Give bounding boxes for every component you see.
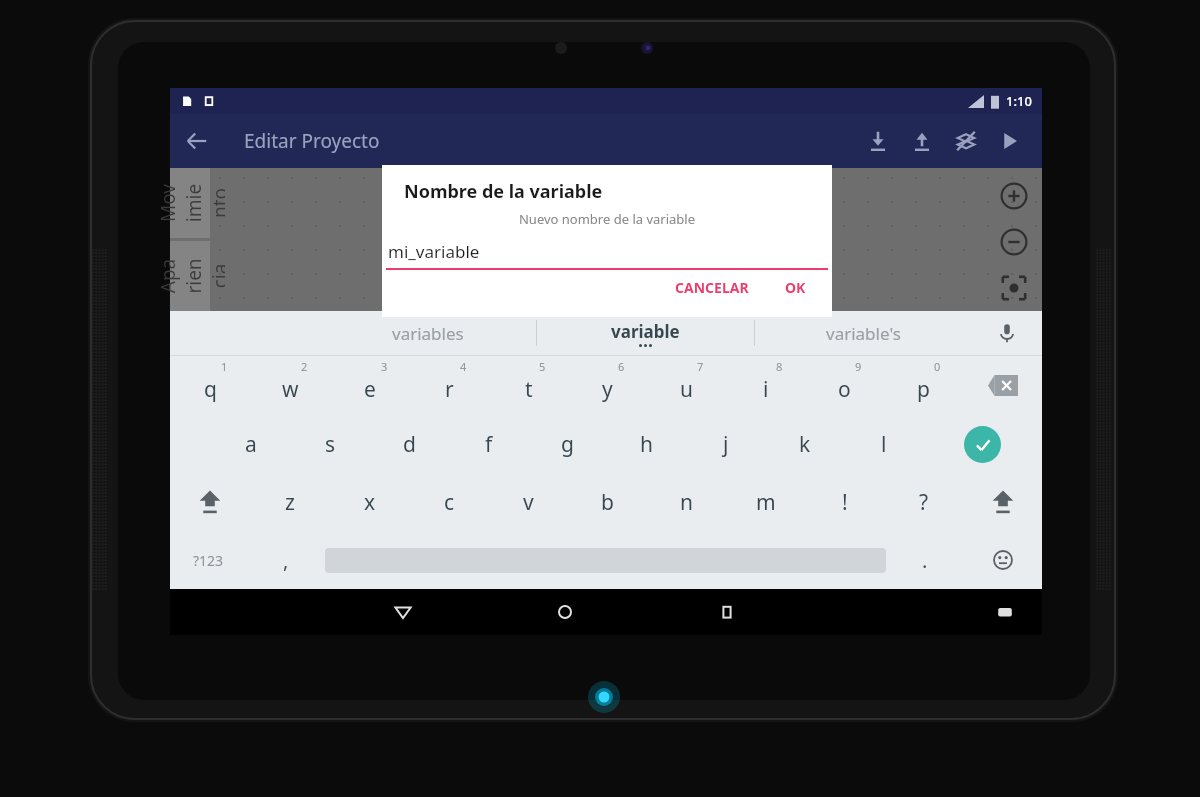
staticText: Apariencia — [155, 256, 225, 296]
button[interactable]: 3 — [330, 356, 410, 415]
button[interactable]: Layers off — [944, 119, 988, 163]
button[interactable]: 2 — [250, 356, 330, 415]
staticText: l — [881, 430, 887, 459]
button[interactable]: 7 — [647, 356, 726, 415]
staticText: b — [601, 488, 614, 517]
button[interactable]: OK — [777, 272, 814, 303]
staticText: h — [640, 430, 653, 459]
staticText: f — [485, 430, 493, 459]
button[interactable]: s — [291, 415, 370, 473]
button[interactable]: Back — [380, 589, 426, 635]
button[interactable]: j — [686, 415, 765, 473]
staticText: variable — [611, 320, 680, 343]
button[interactable]: d — [370, 415, 449, 473]
button[interactable]: Hide keyboard — [982, 589, 1028, 635]
button[interactable]: Shift — [963, 473, 1042, 531]
button[interactable]: Upload — [900, 119, 944, 163]
button[interactable]: Emoji — [964, 531, 1042, 589]
staticText: CANCELAR — [675, 278, 749, 297]
staticText: q — [204, 375, 217, 404]
button[interactable]: variables — [320, 311, 536, 355]
button[interactable]: 0 — [884, 356, 963, 415]
button[interactable]: variable — [537, 311, 754, 355]
staticText: u — [680, 375, 693, 404]
staticText: Editar Proyecto — [244, 128, 380, 154]
button[interactable]: Movimiento — [170, 168, 210, 238]
button[interactable]: x — [330, 473, 410, 531]
staticText: k — [799, 430, 811, 459]
button[interactable]: h — [607, 415, 686, 473]
button[interactable]: Recents — [704, 589, 750, 635]
staticText: variables — [392, 322, 464, 345]
staticText: 1 — [221, 359, 228, 374]
button[interactable]: Space — [325, 541, 886, 579]
staticText: w — [282, 375, 299, 404]
button[interactable]: Voice input — [972, 311, 1042, 355]
staticText: 8 — [776, 359, 783, 374]
button[interactable]: a — [211, 415, 291, 473]
button[interactable]: Backspace — [963, 356, 1042, 415]
button[interactable]: k — [765, 415, 844, 473]
staticText: n — [680, 488, 693, 517]
staticText: 2 — [301, 359, 308, 374]
button[interactable]: Download — [856, 119, 900, 163]
staticText: . — [922, 547, 928, 574]
button[interactable]: 9 — [805, 356, 884, 415]
staticText: 4 — [460, 359, 467, 374]
button[interactable]: ! — [805, 473, 884, 531]
staticText: ? — [919, 488, 929, 517]
staticText: s — [325, 430, 336, 459]
button[interactable]: 5 — [489, 356, 568, 415]
button[interactable]: l — [844, 415, 923, 473]
button[interactable]: f — [449, 415, 528, 473]
button[interactable]: c — [410, 473, 489, 531]
button[interactable]: Home — [542, 589, 588, 635]
staticText: x — [364, 488, 376, 517]
staticText: y — [602, 375, 613, 404]
staticText: 0 — [934, 359, 941, 374]
staticText: 6 — [618, 359, 625, 374]
staticText: ?123 — [193, 551, 224, 570]
button[interactable]: b — [568, 473, 647, 531]
button[interactable]: ? — [884, 473, 963, 531]
button[interactable]: Back — [170, 114, 224, 168]
staticText: ! — [842, 488, 848, 517]
staticText: m — [756, 488, 776, 517]
button[interactable]: 4 — [410, 356, 489, 415]
button[interactable]: CANCELAR — [667, 272, 757, 303]
button[interactable]: Shift — [170, 473, 250, 531]
button[interactable]: Enter — [923, 415, 1042, 473]
button[interactable]: Zoom in — [994, 176, 1034, 216]
staticText: mi_variable — [388, 240, 480, 263]
staticText: 1:10 — [1006, 92, 1032, 110]
button[interactable]: g — [528, 415, 607, 473]
staticText: Nombre de la variable — [404, 179, 603, 204]
button[interactable] — [460, 272, 710, 302]
staticText: g — [561, 430, 574, 459]
button[interactable]: n — [647, 473, 726, 531]
button[interactable]: Apariencia — [170, 241, 210, 311]
staticText: v — [523, 488, 534, 517]
button[interactable]: Run — [988, 119, 1032, 163]
button[interactable]: mi_variable — [386, 240, 828, 270]
button[interactable]: , — [247, 531, 325, 589]
staticText: OK — [785, 278, 806, 297]
button[interactable]: Zoom out — [994, 222, 1034, 262]
button[interactable]: variable's — [755, 311, 972, 355]
staticText: i — [763, 375, 769, 404]
button[interactable]: 6 — [568, 356, 647, 415]
button[interactable]: 1 — [170, 356, 250, 415]
button[interactable]: . — [886, 531, 964, 589]
staticText: variable's — [826, 322, 901, 345]
staticText: e — [364, 375, 376, 404]
staticText: c — [444, 488, 455, 517]
button[interactable]: ?123 — [170, 531, 247, 589]
staticText: Nuevo nombre de la variable — [382, 210, 832, 228]
button[interactable]: z — [250, 473, 330, 531]
button[interactable]: Center — [994, 268, 1034, 308]
staticText: Movimiento — [155, 183, 225, 223]
button[interactable]: 8 — [726, 356, 805, 415]
staticText: r — [445, 375, 454, 404]
button[interactable]: m — [726, 473, 805, 531]
button[interactable]: v — [489, 473, 568, 531]
